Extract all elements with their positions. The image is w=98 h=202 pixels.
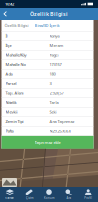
staticText: Özellik Bilgisi — [4, 23, 28, 28]
staticText: Konum — [44, 196, 54, 200]
staticText: 3 — [49, 81, 51, 86]
staticText: Taşı. Alanı — [5, 90, 23, 96]
staticText: Yağcı — [49, 52, 58, 58]
button[interactable]: Profil — [78, 187, 98, 202]
staticText: Ara — [67, 196, 71, 200]
button[interactable]: Bina/3D İçerik — [34, 20, 59, 31]
staticText: Özellik Bilgisi — [30, 10, 68, 18]
button[interactable]: Konum — [39, 187, 59, 202]
staticText: Nitelik — [5, 100, 16, 105]
button[interactable]: Back — [0, 8, 11, 20]
staticText: Parsel — [5, 81, 16, 86]
staticText: Mevkii — [5, 109, 17, 115]
button[interactable]: Çizim — [20, 187, 39, 202]
staticText: Tarla — [49, 100, 58, 105]
staticText: Çizim — [26, 196, 33, 200]
button[interactable]: Taşınmaz ekle — [1, 136, 93, 149]
staticText: 10:42 — [5, 1, 14, 7]
button[interactable]: Harita tipi — [2, 178, 17, 187]
staticText: 2.924,57 — [49, 90, 63, 96]
staticText: Taşınmaz ekle — [34, 140, 60, 145]
button[interactable]: Ara — [59, 187, 78, 202]
button[interactable]: Katman — [0, 187, 20, 202]
staticText: Mahalle/Köy — [5, 52, 26, 58]
staticText: 180 — [49, 71, 55, 77]
staticText: Ana Taşınmaz — [49, 119, 74, 124]
staticText: Katman — [5, 196, 14, 200]
staticText: Zemin Tipi — [5, 119, 23, 124]
staticText: Ada — [5, 71, 12, 77]
button[interactable]: Özellik Bilgisi — [4, 20, 28, 31]
staticText: İl — [5, 33, 7, 39]
staticText: Pafta — [5, 128, 13, 134]
staticText: Bina/3D İçerik — [34, 23, 59, 28]
staticText: Konya — [49, 33, 59, 39]
staticText: Meram — [49, 43, 63, 48]
staticText: Profil — [84, 196, 92, 200]
staticText: İlçe — [5, 43, 11, 48]
staticText: 173157 — [49, 62, 61, 67]
staticText: Mahalle No — [5, 62, 25, 67]
staticText: Seki — [49, 109, 56, 115]
staticText: N29.25.K:4.4 — [49, 128, 70, 134]
